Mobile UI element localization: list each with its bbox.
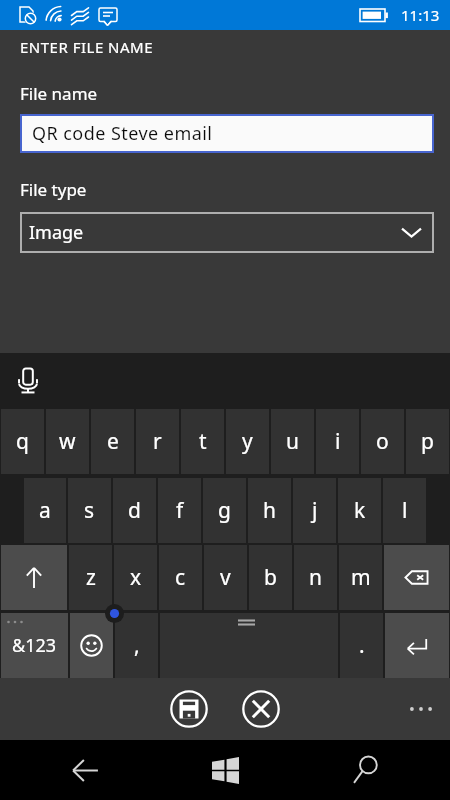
- button[interactable]: Image: [20, 212, 434, 253]
- button[interactable]: z: [69, 545, 112, 610]
- staticText: a: [39, 496, 51, 525]
- button[interactable]: .: [340, 613, 383, 678]
- staticText: u: [286, 427, 299, 456]
- button[interactable]: Save: [167, 687, 211, 731]
- button[interactable]: l: [383, 478, 426, 543]
- button[interactable]: h: [248, 478, 291, 543]
- staticText: x: [130, 563, 142, 592]
- staticText: Image: [29, 220, 84, 245]
- button[interactable]: c: [159, 545, 202, 610]
- staticText: n: [309, 563, 322, 592]
- staticText: o: [376, 427, 389, 456]
- staticText: ,: [134, 631, 140, 660]
- button[interactable]: Emoji: [70, 613, 113, 678]
- button[interactable]: u: [271, 409, 314, 474]
- staticText: &123: [12, 633, 57, 658]
- button[interactable]: f: [158, 478, 201, 543]
- staticText: r: [153, 427, 162, 456]
- staticText: 11:13: [401, 5, 440, 25]
- button[interactable]: g: [203, 478, 246, 543]
- staticText: w: [59, 427, 76, 456]
- staticText: e: [107, 427, 119, 456]
- button[interactable]: Back: [0, 740, 150, 800]
- staticText: i: [335, 427, 341, 456]
- staticText: File name: [20, 82, 98, 105]
- button[interactable]: p: [406, 409, 449, 474]
- staticText: q: [16, 427, 29, 456]
- staticText: g: [218, 496, 231, 525]
- staticText: z: [86, 563, 96, 592]
- staticText: QR code Steve email: [32, 121, 213, 146]
- button[interactable]: Backspace: [384, 545, 449, 610]
- staticText: h: [263, 496, 276, 525]
- button[interactable]: j: [293, 478, 336, 543]
- staticText: m: [351, 563, 371, 592]
- button[interactable]: s: [68, 478, 111, 543]
- button[interactable]: d: [113, 478, 156, 543]
- staticText: b: [264, 563, 277, 592]
- staticText: p: [421, 427, 434, 456]
- button[interactable]: Cancel: [239, 687, 283, 731]
- button[interactable]: Search: [300, 740, 450, 800]
- staticText: File type: [20, 178, 87, 201]
- button[interactable]: QR code Steve email: [22, 116, 432, 151]
- button[interactable]: a: [24, 478, 66, 543]
- staticText: y: [242, 427, 253, 456]
- staticText: j: [312, 496, 318, 525]
- button[interactable]: &123: [1, 613, 68, 678]
- button[interactable]: o: [361, 409, 404, 474]
- button[interactable]: Space: [160, 613, 338, 678]
- staticText: ENTER FILE NAME: [20, 37, 154, 57]
- button[interactable]: Shift: [1, 545, 67, 610]
- staticText: k: [354, 496, 366, 525]
- staticText: f: [176, 496, 184, 525]
- button[interactable]: x: [114, 545, 157, 610]
- staticText: s: [84, 496, 95, 525]
- button[interactable]: r: [136, 409, 179, 474]
- button[interactable]: Enter: [385, 613, 449, 678]
- button[interactable]: y: [226, 409, 269, 474]
- button[interactable]: t: [181, 409, 224, 474]
- staticText: l: [402, 496, 408, 525]
- staticText: v: [220, 563, 231, 592]
- button[interactable]: w: [46, 409, 89, 474]
- staticText: t: [199, 427, 207, 456]
- staticText: c: [175, 563, 186, 592]
- staticText: d: [128, 496, 141, 525]
- button[interactable]: k: [338, 478, 381, 543]
- button[interactable]: m: [339, 545, 382, 610]
- button[interactable]: i: [316, 409, 359, 474]
- button[interactable]: b: [249, 545, 292, 610]
- button[interactable]: e: [91, 409, 134, 474]
- button[interactable]: More options: [397, 685, 445, 733]
- button[interactable]: Start: [150, 740, 300, 800]
- button[interactable]: Voice input: [8, 361, 48, 401]
- button[interactable]: n: [294, 545, 337, 610]
- staticText: .: [359, 631, 365, 660]
- button[interactable]: ,: [115, 613, 158, 678]
- button[interactable]: v: [204, 545, 247, 610]
- button[interactable]: q: [1, 409, 44, 474]
